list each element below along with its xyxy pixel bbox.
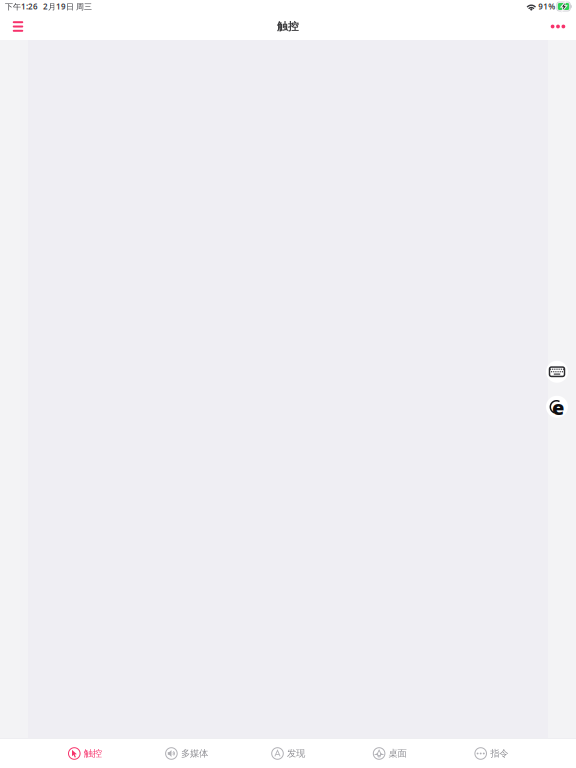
button[interactable]: Menu bbox=[5, 13, 31, 39]
staticText: 2月19日 周三 bbox=[43, 1, 92, 12]
staticText: 触控 bbox=[84, 748, 102, 759]
staticText: 发现 bbox=[287, 748, 305, 759]
staticText: 指令 bbox=[490, 748, 508, 759]
button[interactable]: Browser bbox=[546, 396, 568, 418]
staticText: 91% bbox=[538, 1, 555, 12]
button[interactable]: 发现 bbox=[237, 739, 339, 768]
staticText: 触控 bbox=[277, 20, 299, 33]
staticText: e bbox=[552, 394, 564, 421]
staticText: 多媒体 bbox=[181, 748, 208, 759]
button[interactable]: 触控 bbox=[34, 739, 136, 768]
button[interactable]: 多媒体 bbox=[136, 739, 237, 768]
button[interactable]: More bbox=[546, 13, 570, 39]
button[interactable]: 指令 bbox=[440, 739, 542, 768]
staticText: 桌面 bbox=[389, 748, 407, 759]
button[interactable]: 桌面 bbox=[339, 739, 440, 768]
staticText: 下午1:26 bbox=[5, 1, 38, 12]
button[interactable]: Keyboard bbox=[546, 361, 568, 383]
